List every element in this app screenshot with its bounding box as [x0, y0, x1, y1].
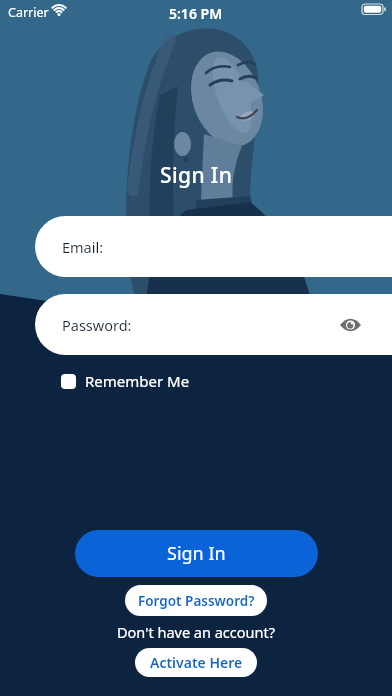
- staticText: Carrier: [8, 4, 49, 21]
- staticText: Sign In: [160, 161, 233, 190]
- staticText: 5:16 PM: [169, 4, 223, 23]
- button[interactable]: Email:: [35, 216, 392, 277]
- staticText: Sign In: [167, 541, 226, 566]
- staticText: Don't have an account?: [117, 622, 275, 642]
- button[interactable]: Forgot Password?: [125, 585, 267, 616]
- staticText: Activate Here: [150, 653, 243, 672]
- button[interactable]: Sign In: [75, 530, 318, 577]
- staticText: Remember Me: [85, 371, 190, 391]
- button[interactable]: Activate Here: [135, 648, 257, 677]
- staticText: Forgot Password?: [138, 592, 255, 610]
- staticText: Email:: [62, 237, 104, 257]
- button[interactable]: Password:: [35, 294, 392, 355]
- staticText: Password:: [62, 315, 132, 335]
- button[interactable]: [61, 374, 76, 389]
